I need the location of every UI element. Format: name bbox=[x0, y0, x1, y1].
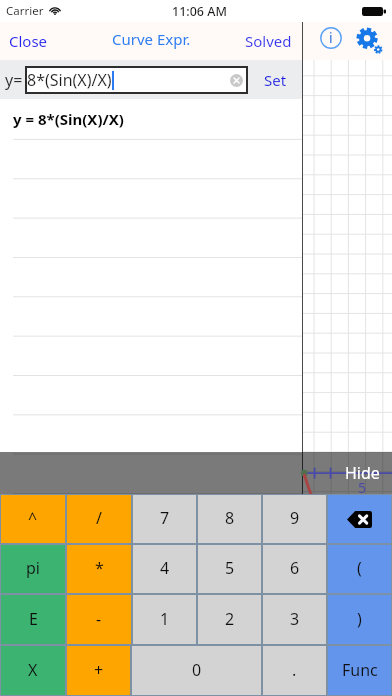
button[interactable]: 7 bbox=[133, 495, 196, 543]
staticText: 6 bbox=[290, 557, 300, 579]
staticText: . bbox=[292, 659, 297, 681]
button[interactable]: Settings bbox=[355, 27, 385, 57]
staticText: X bbox=[28, 659, 38, 681]
button[interactable]: Set bbox=[254, 64, 297, 96]
button[interactable]: 4 bbox=[133, 545, 196, 593]
button[interactable]: y = 8*(Sin(X)/X) bbox=[0, 99, 303, 138]
staticText: 11:06 AM bbox=[172, 3, 227, 20]
button[interactable] bbox=[0, 372, 303, 411]
staticText: * bbox=[95, 557, 104, 579]
button[interactable]: ) bbox=[328, 595, 391, 644]
button[interactable]: Close bbox=[0, 24, 57, 58]
button[interactable] bbox=[0, 216, 303, 255]
staticText: 2 bbox=[225, 608, 235, 630]
button[interactable]: 6 bbox=[263, 545, 326, 593]
button[interactable]: Curve Expr. bbox=[104, 22, 199, 56]
staticText: ) bbox=[357, 608, 362, 630]
button[interactable]: 3 bbox=[263, 595, 326, 644]
button[interactable]: 8*(Sin(X)/X) bbox=[25, 66, 248, 94]
button[interactable]: + bbox=[67, 646, 130, 695]
button[interactable]: Func bbox=[328, 646, 391, 695]
button[interactable]: 2 bbox=[198, 595, 261, 644]
staticText: 7 bbox=[160, 507, 170, 529]
staticText: ( bbox=[357, 557, 362, 579]
staticText: i bbox=[329, 28, 333, 47]
staticText: Func bbox=[342, 659, 378, 681]
button[interactable] bbox=[0, 294, 303, 333]
button[interactable]: Backspace bbox=[328, 495, 391, 543]
staticText: Set bbox=[264, 70, 287, 90]
staticText: y= bbox=[5, 69, 23, 91]
staticText: y = 8*(Sin(X)/X) bbox=[13, 109, 124, 129]
staticText: E bbox=[29, 608, 38, 630]
button[interactable] bbox=[0, 450, 303, 489]
button[interactable] bbox=[0, 138, 303, 177]
staticText: ^ bbox=[28, 507, 38, 529]
staticText: - bbox=[96, 608, 102, 630]
staticText: 4 bbox=[160, 557, 170, 579]
button[interactable] bbox=[0, 177, 303, 216]
staticText: 9 bbox=[290, 507, 300, 529]
button[interactable]: 0 bbox=[132, 646, 261, 695]
button[interactable]: 8 bbox=[198, 495, 261, 543]
button[interactable]: X bbox=[1, 646, 65, 695]
staticText: / bbox=[96, 507, 102, 529]
button[interactable]: / bbox=[67, 495, 131, 543]
staticText: 1 bbox=[160, 608, 170, 630]
button[interactable]: 5 bbox=[198, 545, 261, 593]
staticText: 3 bbox=[290, 608, 300, 630]
button[interactable]: Solved bbox=[236, 24, 303, 58]
staticText: 8 bbox=[225, 507, 235, 529]
button[interactable]: - bbox=[67, 595, 131, 644]
button[interactable] bbox=[0, 411, 303, 450]
button[interactable] bbox=[0, 255, 303, 294]
button[interactable]: Clear text bbox=[230, 74, 243, 87]
staticText: 8*(Sin(X)/X) bbox=[27, 69, 112, 91]
button[interactable]: pi bbox=[1, 545, 65, 593]
staticText: Close bbox=[9, 31, 48, 51]
staticText: pi bbox=[26, 557, 40, 579]
button[interactable]: ^ bbox=[1, 495, 65, 543]
button[interactable]: . bbox=[263, 646, 326, 695]
staticText: Carrier bbox=[6, 3, 44, 19]
button[interactable]: Info bbox=[317, 24, 345, 52]
button[interactable]: ( bbox=[328, 545, 391, 593]
button[interactable]: Hide bbox=[345, 462, 380, 484]
staticText: 5 bbox=[358, 478, 367, 497]
staticText: Hide bbox=[345, 462, 380, 484]
staticText: 5 bbox=[225, 557, 235, 579]
staticText: 0 bbox=[192, 659, 202, 681]
staticText: Curve Expr. bbox=[112, 29, 191, 49]
button[interactable]: * bbox=[67, 545, 131, 593]
button[interactable]: 9 bbox=[263, 495, 326, 543]
button[interactable]: E bbox=[1, 595, 65, 644]
staticText: Solved bbox=[245, 31, 292, 51]
staticText: + bbox=[94, 659, 104, 681]
button[interactable] bbox=[0, 333, 303, 372]
button[interactable]: 1 bbox=[133, 595, 196, 644]
